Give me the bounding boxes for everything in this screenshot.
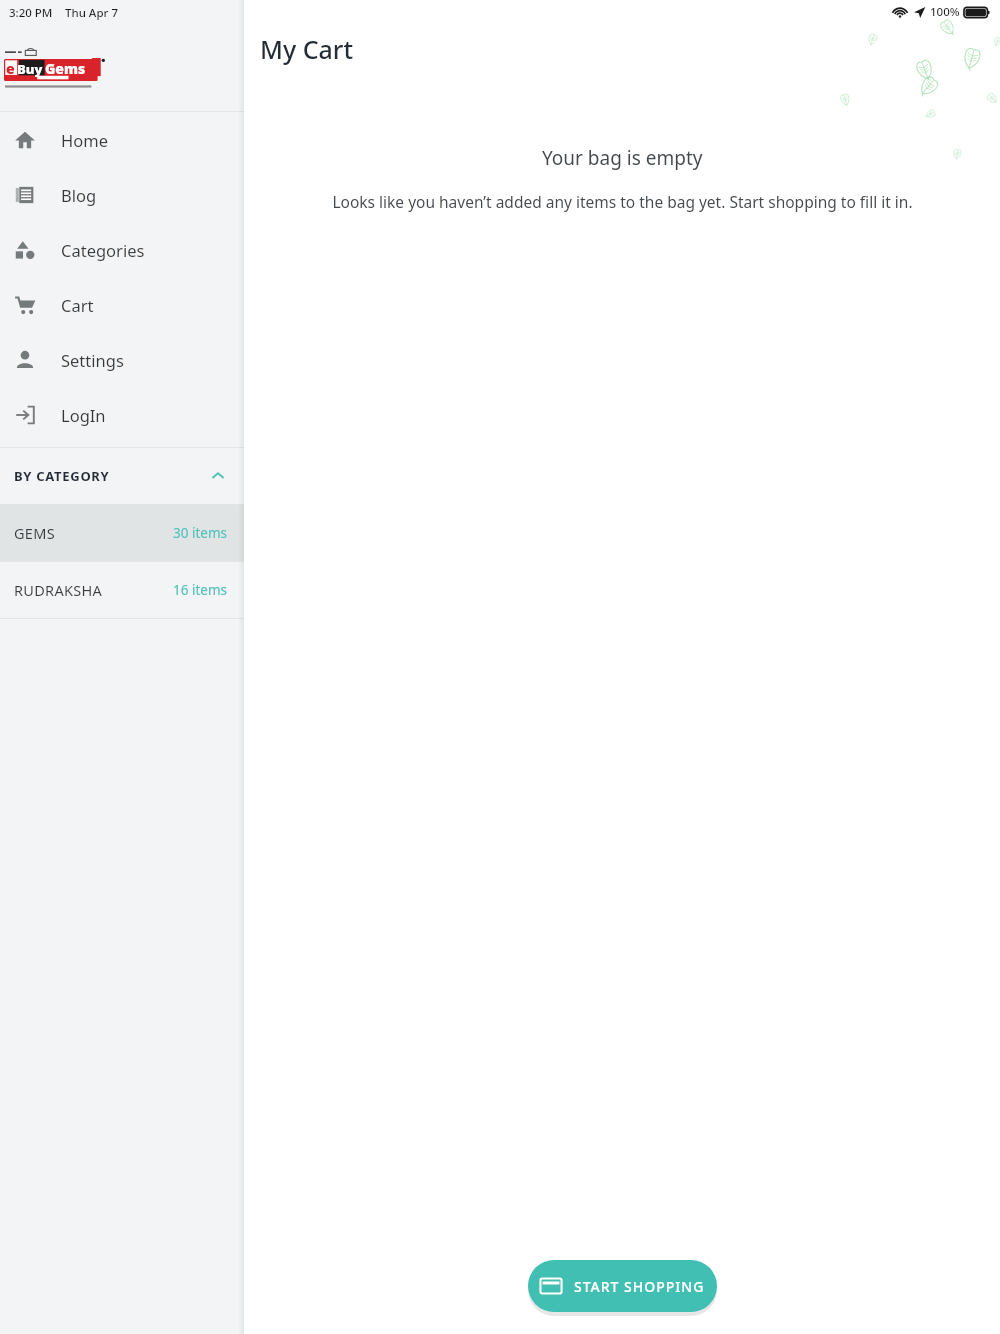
button[interactable]: GEMS <box>0 505 244 561</box>
staticText: Settings <box>61 349 124 371</box>
staticText: Your bag is empty <box>542 145 703 171</box>
staticText: BY CATEGORY <box>14 467 110 485</box>
staticText: Buy <box>17 60 43 78</box>
staticText: Looks like you haven’t added any items t… <box>332 191 913 212</box>
staticText: LogIn <box>61 404 106 426</box>
staticText: GEMS <box>14 523 55 543</box>
staticText: START SHOPPING <box>574 1277 705 1296</box>
staticText: Categories <box>61 239 145 261</box>
other: Location <box>913 6 926 19</box>
staticText: Blog <box>61 184 97 206</box>
other: Battery full <box>964 6 990 19</box>
staticText: 30 items <box>173 524 228 542</box>
other: Collapse <box>208 466 228 486</box>
button[interactable]: Settings <box>0 332 244 387</box>
button[interactable]: START SHOPPING <box>528 1260 717 1312</box>
button[interactable]: e <box>4 47 108 95</box>
button[interactable]: Blog <box>0 167 244 222</box>
staticText: e <box>6 59 15 78</box>
staticText: 3:20 PM <box>9 5 53 21</box>
button[interactable]: Cart <box>0 277 244 332</box>
staticText: RUDRAKSHA <box>14 580 103 600</box>
staticText: Thu Apr 7 <box>65 5 118 21</box>
staticText: Gems <box>45 59 86 78</box>
staticText: 16 items <box>173 581 228 599</box>
staticText: 100% <box>930 4 960 20</box>
staticText: Cart <box>61 294 94 316</box>
staticText: Home <box>61 129 108 151</box>
button[interactable]: Home <box>0 112 244 167</box>
button[interactable]: BY CATEGORY <box>0 448 244 504</box>
button[interactable]: LogIn <box>0 387 244 442</box>
button[interactable]: RUDRAKSHA <box>0 562 244 618</box>
other: Wi-Fi <box>892 4 908 20</box>
button[interactable]: Categories <box>0 222 244 277</box>
staticText: My Cart <box>260 32 353 66</box>
